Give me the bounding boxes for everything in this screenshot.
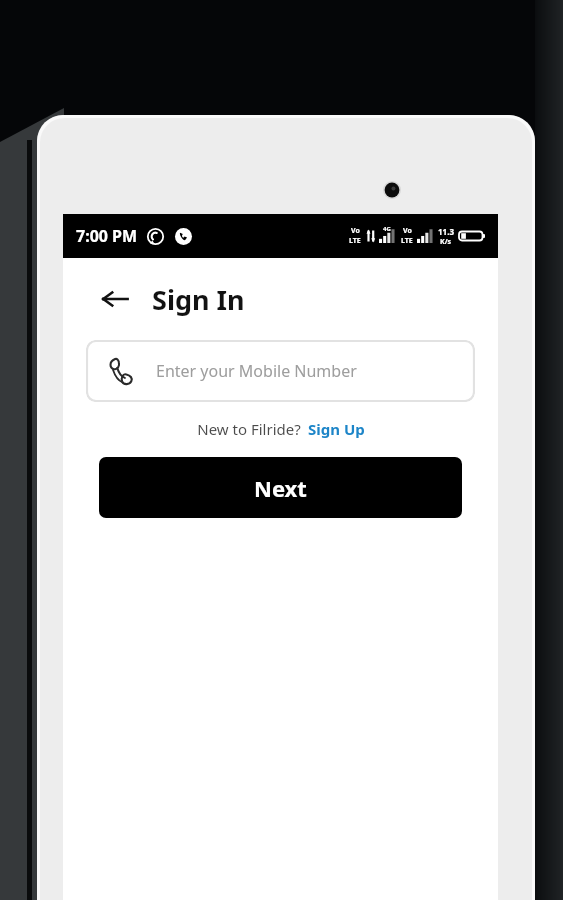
button[interactable]: Sign Up: [308, 419, 365, 439]
staticText: Sign In: [152, 281, 245, 318]
staticText: Vo: [403, 226, 412, 236]
button[interactable]: Enter your Mobile Number: [86, 340, 475, 402]
staticText: 4G: [383, 225, 391, 233]
button[interactable]: Back: [98, 282, 132, 316]
staticText: Enter your Mobile Number: [156, 360, 357, 382]
staticText: New to Filride?: [197, 419, 301, 439]
staticText: LTE: [349, 236, 361, 246]
staticText: Next: [254, 473, 307, 503]
staticText: Sign Up: [308, 419, 365, 439]
staticText: K/s: [440, 237, 452, 247]
staticText: LTE: [401, 236, 413, 246]
staticText: 11.3: [438, 226, 454, 237]
staticText: Vo: [351, 226, 360, 236]
button[interactable]: Next: [99, 457, 462, 518]
staticText: 7:00 PM: [76, 225, 138, 247]
